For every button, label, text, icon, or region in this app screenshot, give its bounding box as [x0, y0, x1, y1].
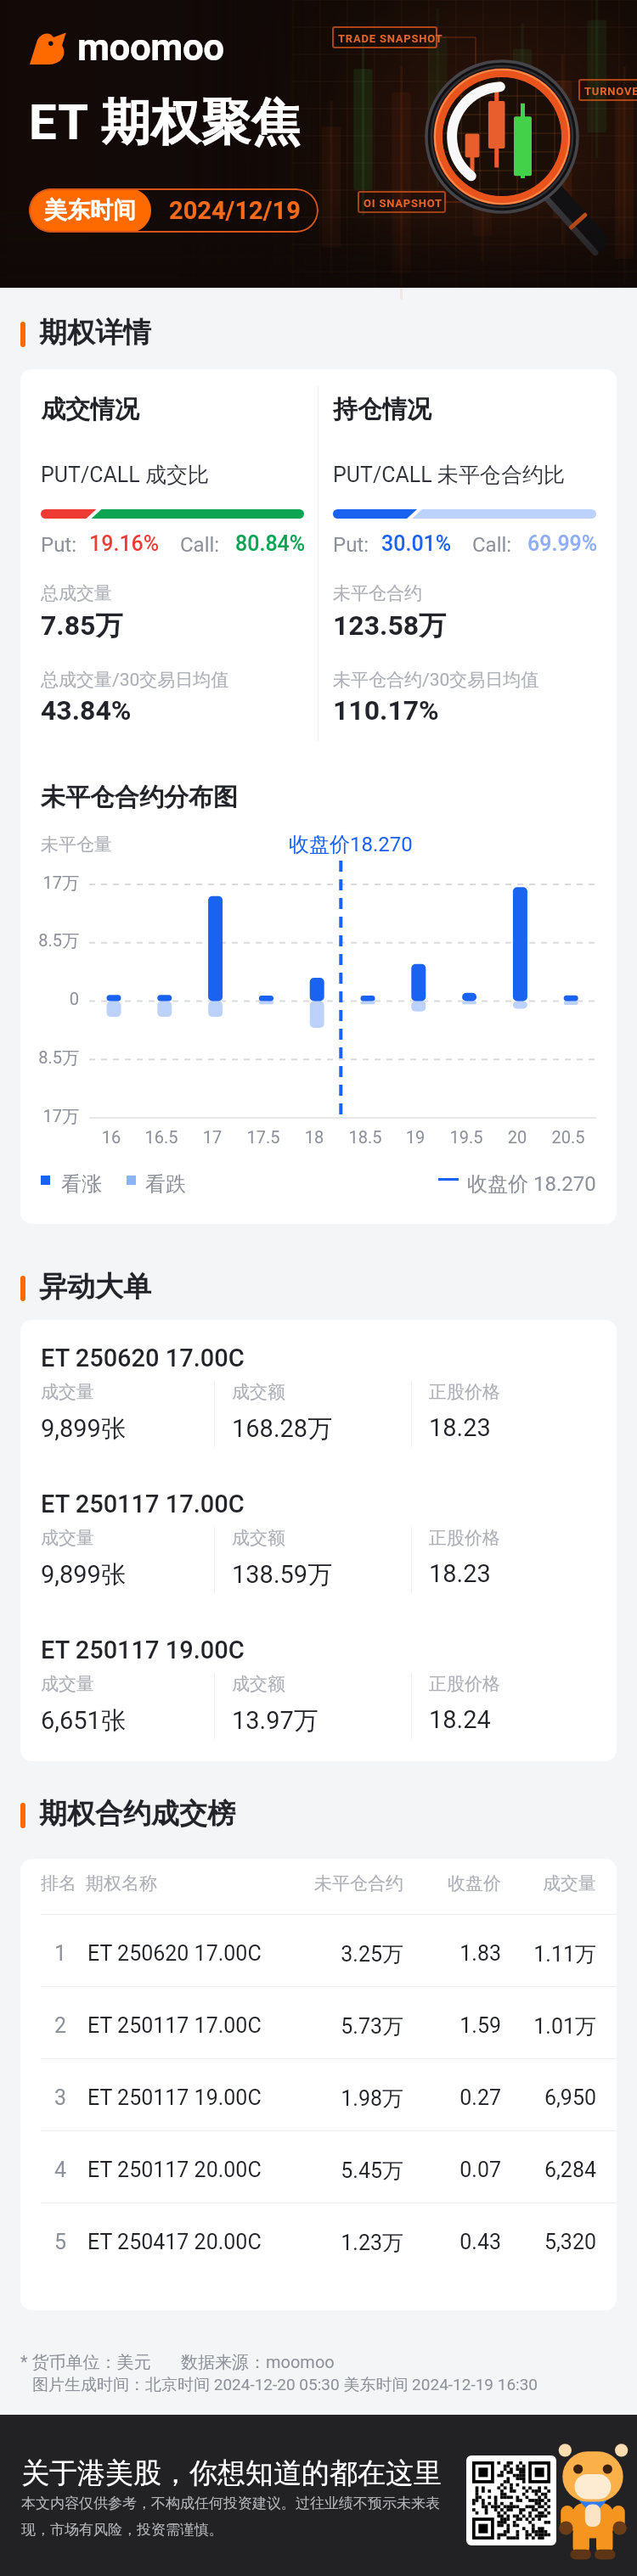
staticText: 8.5万	[11, 1047, 79, 1069]
staticText: 总成交量/30交易日均值	[41, 669, 229, 691]
staticText: 3	[54, 2085, 67, 2110]
staticText: 看跌	[145, 1171, 186, 1197]
staticText: 138.59万	[232, 1559, 333, 1591]
staticText: Put:	[41, 533, 77, 557]
staticText: 1.01万	[503, 2013, 596, 2040]
staticText: ET 250117 17.00C	[87, 2013, 262, 2038]
staticText: ET 250620 17.00C	[41, 1344, 245, 1372]
staticText: 未平仓合约	[251, 1872, 403, 1894]
staticText: 成交量	[41, 1673, 94, 1695]
staticText: 30.01%	[381, 531, 452, 556]
staticText: 0.07	[408, 2158, 501, 2182]
staticText: 图片生成时间：北京时间 2024-12-20 05:30 美东时间 2024-1…	[32, 2375, 538, 2395]
staticText: 18.5	[327, 1127, 403, 1147]
staticText: 成交量	[41, 1527, 94, 1549]
staticText: ET 250117 19.00C	[87, 2085, 262, 2110]
staticText: 正股价格	[429, 1527, 500, 1549]
staticText: 关于港美股，你想知道的都在这里	[21, 2455, 442, 2491]
button[interactable]	[20, 1915, 617, 1986]
staticText: ET 250117 19.00C	[41, 1636, 245, 1664]
staticText: ET 250417 20.00C	[87, 2230, 262, 2254]
button[interactable]	[20, 1468, 617, 1612]
staticText: 18.23	[429, 1413, 491, 1442]
staticText: 正股价格	[429, 1673, 500, 1695]
staticText: ET 250117 17.00C	[41, 1490, 245, 1518]
staticText: 排名	[41, 1872, 76, 1894]
staticText: 未平仓量	[41, 833, 112, 856]
staticText: 9,899张	[41, 1413, 126, 1445]
staticText: 13.97万	[232, 1705, 318, 1737]
staticText: ET 250117 20.00C	[87, 2158, 262, 2182]
staticText: 18.24	[429, 1705, 491, 1734]
staticText: 成交额	[232, 1527, 285, 1549]
button[interactable]	[20, 1322, 617, 1466]
staticText: 持仓情况	[333, 394, 431, 425]
staticText: 168.28万	[232, 1413, 333, 1445]
staticText: 9,899张	[41, 1559, 126, 1591]
staticText: TURNOVER	[584, 85, 637, 98]
staticText: 总成交量	[41, 582, 112, 604]
staticText: ET 250620 17.00C	[87, 1941, 262, 1966]
staticText: 18	[276, 1127, 352, 1147]
staticText: 收盘价 18.270	[467, 1171, 596, 1197]
button[interactable]	[20, 1987, 617, 2058]
staticText: 数据来源：moomoo	[181, 2352, 335, 2373]
button[interactable]	[20, 2059, 617, 2130]
staticText: 69.99%	[527, 531, 598, 556]
staticText: 17万	[11, 1106, 79, 1127]
staticText: 3.25万	[251, 1941, 403, 1967]
staticText: Put:	[333, 533, 369, 557]
button[interactable]	[20, 1614, 617, 1758]
staticText: ET 期权聚焦	[29, 92, 302, 154]
staticText: Call:	[180, 533, 220, 557]
staticText: 成交量	[41, 1381, 94, 1403]
staticText: 19.16%	[89, 531, 160, 556]
staticText: PUT/CALL 未平仓合约比	[333, 462, 565, 488]
staticText: 成交情况	[41, 394, 139, 425]
button[interactable]	[20, 2131, 617, 2203]
staticText: 7.85万	[41, 609, 123, 643]
staticText: 成交量	[503, 1872, 596, 1894]
staticText: moomoo	[77, 25, 224, 70]
staticText: 20.5	[530, 1127, 606, 1147]
staticText: 0.43	[408, 2230, 501, 2254]
staticText: 16	[73, 1127, 149, 1147]
staticText: 成交额	[232, 1673, 285, 1695]
staticText: Call:	[472, 533, 512, 557]
staticText: 5.45万	[251, 2158, 403, 2184]
staticText: 异动大单	[39, 1269, 151, 1305]
staticText: 1	[54, 1941, 67, 1966]
staticText: 6,284	[503, 2158, 596, 2182]
staticText: 17	[174, 1127, 251, 1147]
staticText: 1.98万	[251, 2085, 403, 2112]
staticText: 1.83	[408, 1941, 501, 1966]
staticText: 收盘价18.270	[289, 832, 413, 857]
staticText: 2024/12/19	[169, 196, 301, 225]
button[interactable]	[20, 2203, 617, 2275]
staticText: 18.23	[429, 1559, 491, 1588]
staticText: 0.27	[408, 2085, 501, 2110]
staticText: 未平仓合约/30交易日均值	[333, 669, 539, 691]
staticText: 17万	[11, 873, 79, 894]
staticText: 5	[54, 2230, 67, 2254]
staticText: 19	[377, 1127, 454, 1147]
staticText: 6,950	[503, 2085, 596, 2110]
staticText: 110.17%	[333, 694, 439, 727]
staticText: 成交额	[232, 1381, 285, 1403]
button[interactable]: 扫码二维码	[466, 2455, 556, 2545]
staticText: 5,320	[503, 2230, 596, 2254]
staticText: * 货币单位：美元	[20, 2352, 151, 2373]
staticText: 看涨	[61, 1171, 102, 1197]
staticText: 期权详情	[39, 315, 151, 351]
staticText: 80.84%	[235, 531, 306, 556]
staticText: 6,651张	[41, 1705, 126, 1737]
staticText: 8.5万	[11, 930, 79, 951]
staticText: 1.59	[408, 2013, 501, 2038]
staticText: 未平仓合约	[333, 582, 422, 604]
staticText: 1.11万	[503, 1941, 596, 1967]
staticText: PUT/CALL 成交比	[41, 462, 209, 488]
staticText: 123.58万	[333, 609, 447, 643]
staticText: 4	[54, 2158, 67, 2182]
staticText: 正股价格	[429, 1381, 500, 1403]
staticText: 未平仓合约分布图	[41, 782, 238, 813]
